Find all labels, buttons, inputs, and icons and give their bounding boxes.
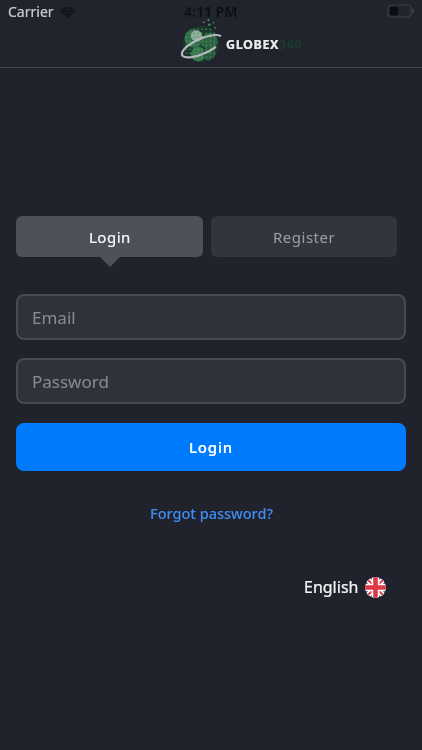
staticText: Register [273,227,336,247]
staticText: Carrier [8,2,54,21]
button[interactable]: Register [211,216,397,257]
staticText: Password [32,370,109,393]
button[interactable]: Email [16,294,406,340]
staticText: English [304,576,359,598]
button[interactable]: Password [16,358,406,404]
staticText: GLOBEX [226,36,279,53]
staticText: Login [89,227,131,247]
staticText: Email [32,306,76,329]
staticText: Forgot password? [150,503,273,523]
button[interactable]: English [302,574,388,600]
button[interactable]: Login [16,216,203,257]
staticText: Login [189,437,233,457]
button[interactable]: Login [16,423,406,471]
staticText: 360 [279,36,303,53]
button[interactable]: Forgot password? [146,499,277,527]
staticText: 4:11 PM [184,2,238,21]
